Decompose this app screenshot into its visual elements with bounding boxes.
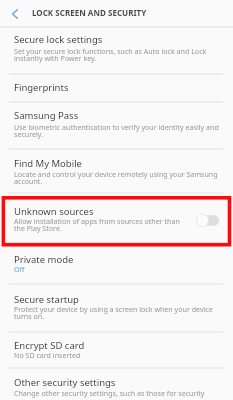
staticText: Private mode (14, 253, 74, 266)
staticText: Set your secure lock functions, such as … (14, 46, 207, 63)
button[interactable]: Back (0, 0, 30, 26)
staticText: Encrypt SD card (14, 339, 85, 352)
button[interactable]: Fingerprints (0, 74, 233, 101)
staticText: Use biometric authentication to verify y… (14, 122, 219, 139)
staticText: No SD card inserted (14, 350, 81, 360)
staticText: Secure lock settings (14, 33, 103, 46)
button[interactable]: Unknown sources (0, 193, 233, 246)
staticText: Off (14, 264, 25, 274)
staticText: Allow installation of apps from sources … (14, 216, 180, 233)
button[interactable]: Encrypt SD card (0, 332, 233, 367)
button[interactable]: Secure lock settings (0, 27, 233, 73)
button[interactable]: Secure startup (0, 284, 233, 331)
button[interactable]: Other security settings (0, 368, 233, 400)
staticText: Secure startup (14, 293, 79, 306)
staticText: LOCK SCREEN AND SECURITY (32, 7, 147, 18)
button[interactable]: Unknown sources toggle (188, 207, 226, 233)
staticText: Samsung Pass (14, 109, 79, 122)
button[interactable]: Private mode (0, 246, 233, 283)
staticText: Fingerprints (14, 81, 69, 94)
staticText: Change other security settings, such as … (14, 388, 205, 398)
staticText: Other security settings (14, 376, 116, 389)
staticText: Unknown sources (14, 205, 94, 218)
button[interactable]: Samsung Pass (0, 102, 233, 148)
button[interactable]: Find My Mobile (0, 149, 233, 192)
staticText: Find My Mobile (14, 157, 82, 170)
staticText: Protect your device by using a screen lo… (14, 304, 213, 321)
staticText: Locate and control your device remotely … (14, 169, 218, 186)
